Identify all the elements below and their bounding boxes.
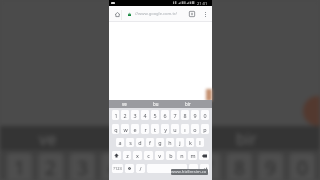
- staticText: 7: [202, 155, 213, 180]
- staticText: c: [147, 152, 150, 159]
- button[interactable]: 7: [170, 108, 180, 122]
- button[interactable]: Backspace: [198, 149, 210, 162]
- button[interactable]: r: [140, 122, 150, 136]
- button[interactable]: f: [145, 136, 155, 149]
- button[interactable]: Shift: [111, 149, 122, 162]
- staticText: bu: [137, 128, 157, 150]
- staticText: y: [164, 126, 167, 133]
- staticText: u: [173, 126, 177, 133]
- button[interactable]: 6: [160, 108, 170, 122]
- staticText: p: [203, 126, 207, 133]
- button[interactable]: ve: [109, 100, 140, 108]
- button[interactable]: a: [115, 136, 125, 149]
- button[interactable]: Comma: [124, 162, 135, 175]
- button[interactable]: j: [175, 136, 185, 149]
- button[interactable]: m: [187, 149, 198, 162]
- staticText: .: [193, 165, 195, 172]
- button[interactable]: b: [165, 149, 176, 162]
- button[interactable]: ?123: [111, 162, 124, 175]
- staticText: //www.google.com.tr/: [135, 11, 178, 17]
- staticText: bir: [236, 128, 257, 150]
- button[interactable]: t: [150, 122, 160, 136]
- staticText: j: [179, 139, 181, 146]
- staticText: e: [133, 126, 137, 133]
- button[interactable]: d: [135, 136, 145, 149]
- button[interactable]: //www.google.com.tr/: [122, 7, 188, 21]
- button[interactable]: 2: [120, 108, 130, 122]
- staticText: m: [190, 152, 196, 159]
- staticText: z: [126, 152, 129, 159]
- button[interactable]: /: [135, 162, 146, 175]
- button[interactable]: 3: [130, 108, 140, 122]
- button[interactable]: Home: [111, 8, 123, 20]
- button[interactable]: g: [155, 136, 165, 149]
- button[interactable]: x: [132, 149, 143, 162]
- button[interactable]: q: [111, 122, 120, 136]
- staticText: r: [144, 126, 147, 133]
- button[interactable]: 4: [140, 108, 150, 122]
- staticText: 0: [297, 155, 308, 180]
- button[interactable]: bir: [172, 100, 204, 108]
- staticText: ve: [122, 101, 127, 107]
- button[interactable]: z: [122, 149, 132, 162]
- staticText: h: [168, 139, 172, 146]
- staticText: 4: [108, 155, 119, 180]
- staticText: 9: [193, 112, 197, 119]
- staticText: t: [154, 126, 156, 133]
- staticText: 5: [140, 155, 151, 180]
- button[interactable]: h: [165, 136, 175, 149]
- button[interactable]: c: [143, 149, 154, 162]
- staticText: l: [199, 139, 201, 146]
- button[interactable]: ı: [180, 122, 190, 136]
- staticText: q: [114, 126, 118, 133]
- button[interactable]: w: [120, 122, 130, 136]
- staticText: 7: [173, 112, 177, 119]
- staticText: 3: [133, 112, 137, 119]
- button[interactable]: n: [176, 149, 187, 162]
- staticText: 6: [163, 112, 167, 119]
- button[interactable]: 9: [190, 108, 200, 122]
- staticText: 21:01: [197, 1, 208, 7]
- button[interactable]: Switch tabs: [186, 8, 198, 20]
- button[interactable]: l: [195, 136, 205, 149]
- staticText: s: [129, 139, 132, 146]
- button[interactable]: 0: [200, 108, 210, 122]
- button[interactable]: p: [200, 122, 210, 136]
- staticText: bir: [185, 101, 191, 107]
- staticText: x: [136, 152, 139, 159]
- staticText: bu: [153, 101, 159, 107]
- staticText: 3: [77, 155, 88, 180]
- button[interactable]: y: [160, 122, 170, 136]
- button[interactable]: 1: [111, 108, 120, 122]
- staticText: 1: [114, 112, 118, 119]
- staticText: 2: [45, 155, 56, 180]
- staticText: 6: [171, 155, 182, 180]
- button[interactable]: k: [185, 136, 195, 149]
- staticText: f: [149, 139, 151, 146]
- staticText: 8: [234, 155, 245, 180]
- staticText: g: [158, 139, 162, 146]
- button[interactable]: 5: [150, 108, 160, 122]
- button[interactable]: v: [154, 149, 165, 162]
- button[interactable]: More options: [199, 8, 211, 20]
- button[interactable]: s: [125, 136, 135, 149]
- staticText: 9: [265, 155, 276, 180]
- staticText: o: [193, 126, 197, 133]
- staticText: 8: [183, 112, 187, 119]
- button[interactable]: e: [130, 122, 140, 136]
- staticText: ı: [184, 126, 186, 133]
- button[interactable]: [146, 162, 188, 175]
- staticText: ?123: [113, 166, 122, 171]
- button[interactable]: bu: [140, 100, 172, 108]
- button[interactable]: u: [170, 122, 180, 136]
- staticText: a: [118, 139, 122, 146]
- staticText: b: [169, 152, 173, 159]
- staticText: n: [180, 152, 184, 159]
- staticText: 0: [203, 112, 207, 119]
- button[interactable]: 8: [180, 108, 190, 122]
- staticText: /: [139, 165, 142, 172]
- button[interactable]: o: [190, 122, 200, 136]
- button[interactable]: .: [188, 162, 199, 175]
- button[interactable]: Enter: [199, 162, 210, 175]
